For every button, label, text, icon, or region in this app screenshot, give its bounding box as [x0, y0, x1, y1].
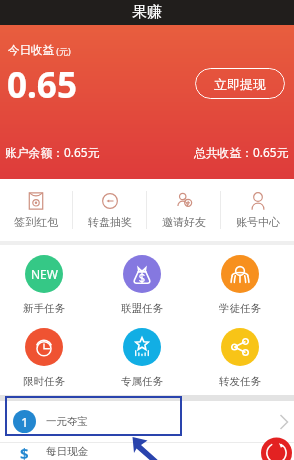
- staticText: 账户余额：0.65元: [5, 144, 100, 160]
- button[interactable]: 限时任务: [0, 328, 93, 388]
- staticText: $: [20, 443, 29, 460]
- staticText: 学徒任务: [219, 302, 261, 315]
- staticText: 总共收益：0.65元: [194, 144, 289, 160]
- button[interactable]: 转盘抽奖: [73, 179, 146, 241]
- staticText: 每日现金: [46, 445, 88, 458]
- staticText: 转发任务: [219, 375, 261, 388]
- button[interactable]: 联盟任务: [93, 255, 191, 315]
- staticText: 1: [21, 413, 29, 431]
- staticText: 签到红包: [14, 215, 58, 229]
- staticText: 账号中心: [236, 215, 280, 229]
- staticText: NEW: [31, 266, 58, 282]
- staticText: 专属任务: [121, 375, 163, 388]
- button[interactable]: Refresh: [0, 0, 294, 460]
- other: annotation: [0, 0, 294, 460]
- staticText: 限时任务: [23, 375, 65, 388]
- staticText: 0.65: [7, 61, 77, 109]
- button[interactable]: 账号中心: [221, 179, 294, 241]
- staticText: 果赚: [132, 3, 162, 22]
- button[interactable]: 专属任务: [93, 328, 191, 388]
- staticText: 立即提现: [214, 76, 266, 92]
- button[interactable]: 学徒任务: [191, 255, 289, 315]
- button[interactable]: NEW: [0, 255, 93, 315]
- button[interactable]: 签到红包: [0, 179, 72, 241]
- button[interactable]: 1: [0, 401, 294, 442]
- staticText: 联盟任务: [121, 302, 163, 315]
- staticText: (元): [54, 45, 71, 57]
- button[interactable]: 邀请好友: [147, 179, 220, 241]
- staticText: 今日收益: [8, 43, 54, 57]
- staticText: 新手任务: [23, 302, 65, 315]
- staticText: 邀请好友: [162, 215, 206, 229]
- button[interactable]: 立即提现: [195, 68, 285, 99]
- button[interactable]: 转发任务: [191, 328, 289, 388]
- staticText: 转盘抽奖: [88, 215, 132, 229]
- button[interactable]: $: [0, 443, 294, 460]
- staticText: 一元夺宝: [46, 415, 88, 428]
